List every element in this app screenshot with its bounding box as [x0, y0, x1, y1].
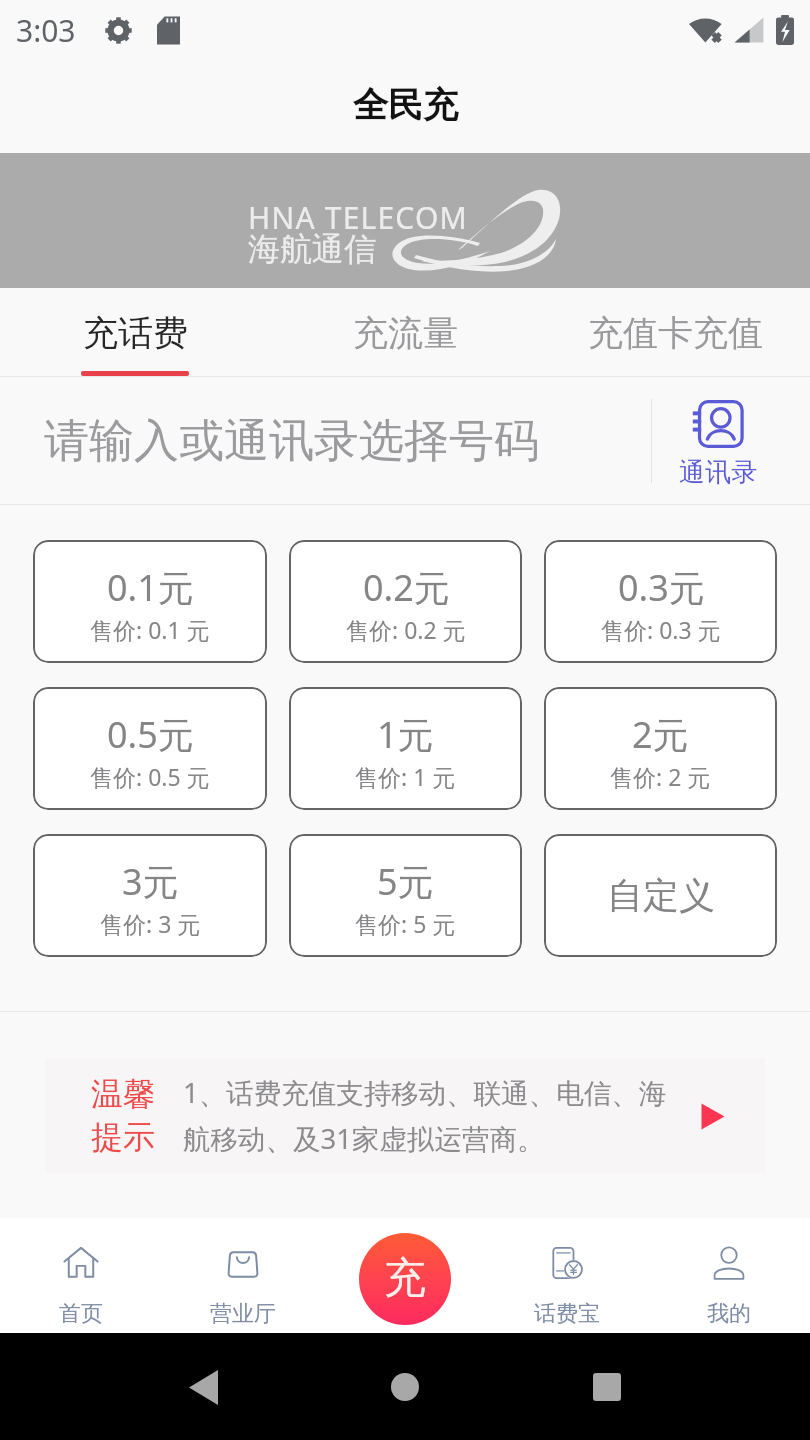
- button[interactable]: 2元: [544, 687, 777, 810]
- other: SD card: [157, 16, 180, 45]
- staticText: 售价: 3 元: [100, 908, 201, 939]
- staticText: 1元: [377, 710, 434, 759]
- staticText: 我的: [707, 1300, 751, 1328]
- staticText: 航移动、及31家虚拟运营商。: [183, 1120, 545, 1158]
- button[interactable]: 充值: [359, 1233, 451, 1325]
- staticText: 3:03: [16, 10, 76, 51]
- staticText: 售价: 0.2 元: [346, 614, 466, 645]
- staticText: 售价: 0.3 元: [601, 614, 721, 645]
- other: Settings: [104, 16, 133, 45]
- button[interactable]: 0.1元: [33, 540, 267, 663]
- button[interactable]: 0.2元: [289, 540, 522, 663]
- button[interactable]: Recents: [582, 1362, 632, 1412]
- staticText: 0.5元: [107, 710, 194, 759]
- staticText: 售价: 1 元: [355, 761, 456, 792]
- staticText: 请输入或通讯录选择号码: [44, 413, 539, 470]
- button[interactable]: 温馨: [45, 1058, 765, 1173]
- staticText: 3元: [122, 857, 179, 906]
- button[interactable]: 1元: [289, 687, 522, 810]
- button[interactable]: 话费宝: [486, 1218, 648, 1333]
- button[interactable]: Home: [380, 1362, 430, 1412]
- staticText: 1、话费充值支持移动、联通、电信、海: [183, 1074, 667, 1112]
- button[interactable]: 5元: [289, 834, 522, 957]
- staticText: 营业厅: [210, 1300, 276, 1328]
- button[interactable]: 0.3元: [544, 540, 777, 663]
- button[interactable]: 营业厅: [162, 1218, 324, 1333]
- staticText: 充值卡充值: [588, 311, 763, 355]
- staticText: 全民充: [353, 83, 458, 127]
- staticText: 售价: 5 元: [355, 908, 456, 939]
- button[interactable]: 我的: [648, 1218, 810, 1333]
- button[interactable]: 充值卡充值: [540, 288, 810, 377]
- staticText: 售价: 0.1 元: [90, 614, 210, 645]
- button[interactable]: 展开提示: [683, 1086, 743, 1146]
- button[interactable]: 自定义: [544, 834, 777, 957]
- staticText: 通讯录: [679, 456, 757, 489]
- staticText: 充: [384, 1252, 426, 1305]
- button[interactable]: 首页: [0, 1218, 162, 1333]
- staticText: 提示: [91, 1117, 155, 1157]
- button[interactable]: 0.5元: [33, 687, 267, 810]
- staticText: 售价: 2 元: [610, 761, 711, 792]
- staticText: 2元: [632, 710, 689, 759]
- staticText: 0.2元: [363, 563, 450, 612]
- staticText: 温馨: [91, 1074, 155, 1114]
- staticText: 首页: [59, 1300, 103, 1328]
- button[interactable]: 充流量: [270, 288, 540, 377]
- staticText: HNA TELECOM: [248, 197, 468, 238]
- staticText: 5元: [377, 857, 434, 906]
- button[interactable]: 请输入或通讯录选择号码: [0, 377, 644, 505]
- staticText: 自定义: [607, 873, 715, 918]
- button[interactable]: 3元: [33, 834, 267, 957]
- staticText: 海航通信: [248, 229, 376, 269]
- staticText: 售价: 0.5 元: [90, 761, 210, 792]
- staticText: 0.1元: [107, 563, 194, 612]
- button[interactable]: 充话费: [0, 288, 270, 377]
- button[interactable]: Back: [178, 1362, 228, 1412]
- button[interactable]: 通讯录: [635, 378, 800, 506]
- staticText: 0.3元: [618, 563, 705, 612]
- staticText: 话费宝: [534, 1300, 600, 1328]
- staticText: 充流量: [353, 311, 458, 355]
- staticText: 充话费: [83, 311, 188, 355]
